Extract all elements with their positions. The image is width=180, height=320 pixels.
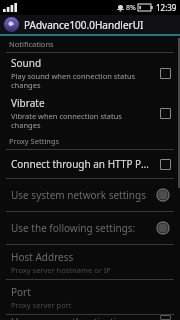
staticText: Port <box>11 285 31 299</box>
staticText: Use proxy authentication <box>11 315 152 320</box>
staticText: Sound <box>11 56 42 70</box>
staticText: Use the following settings: <box>11 221 150 235</box>
staticText: 12:39 <box>156 2 177 13</box>
button[interactable]: PAdvance100.0HandlerUI <box>0 15 180 34</box>
button[interactable]: Sound <box>0 53 180 93</box>
other: Use system network settings <box>156 188 170 202</box>
button[interactable]: Host Address <box>0 245 180 279</box>
other: Checkbox <box>158 157 172 171</box>
staticText: Play sound when connection status change… <box>11 71 152 91</box>
button[interactable]: Connect through an HTTP Proxy <box>0 150 180 178</box>
button[interactable]: Port <box>0 280 180 314</box>
staticText: Notifications <box>9 39 54 49</box>
button[interactable]: Vibrate <box>0 93 180 133</box>
staticText: PAdvance100.0HandlerUI <box>24 18 144 32</box>
staticText: Proxy Settings <box>9 136 60 146</box>
button[interactable]: Use proxy authentication <box>0 315 180 320</box>
staticText: Connect through an HTTP Proxy <box>11 157 152 171</box>
other: Checkbox <box>158 315 172 320</box>
staticText: Vibrate <box>11 96 45 110</box>
staticText: Proxy server hostname or IP <box>11 265 111 275</box>
other: Checkbox <box>158 66 172 80</box>
button[interactable]: Use system network settings <box>0 179 180 211</box>
button[interactable]: Use the following settings: <box>0 212 180 244</box>
staticText: Use system network settings <box>11 188 150 202</box>
staticText: Proxy server port <box>11 300 72 310</box>
other: Checkbox <box>158 106 172 120</box>
other: Use the following settings: <box>156 221 170 235</box>
staticText: 8% <box>126 3 136 13</box>
staticText: Host Address <box>11 250 74 264</box>
staticText: Vibrate when connection status changes <box>11 111 152 131</box>
